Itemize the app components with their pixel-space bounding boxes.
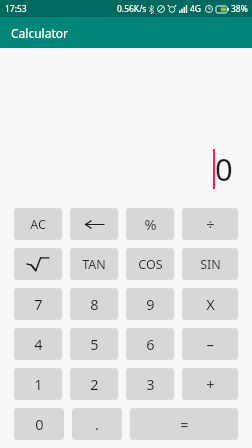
staticText: X — [206, 294, 215, 314]
staticText: 0 — [215, 148, 233, 190]
staticText: + — [206, 374, 215, 394]
staticText: 1 — [34, 374, 43, 394]
button[interactable]: TAN — [70, 248, 118, 280]
button[interactable]: . — [72, 408, 122, 440]
staticText: % — [144, 214, 157, 234]
button[interactable]: 8 — [70, 288, 118, 320]
button[interactable]: 7 — [14, 288, 62, 320]
button[interactable]: + — [182, 368, 238, 400]
staticText: 0.56K/s — [117, 3, 147, 15]
button[interactable]: 3 — [126, 368, 174, 400]
staticText: 38% — [231, 3, 248, 15]
staticText: 4 — [34, 334, 43, 354]
staticText: 5 — [90, 334, 99, 354]
button[interactable]: AC — [14, 208, 62, 240]
staticText: 3 — [146, 374, 155, 394]
button[interactable]: 4 — [14, 328, 62, 360]
button[interactable]: 2 — [70, 368, 118, 400]
button[interactable]: 0 — [14, 408, 64, 440]
button[interactable]: 6 — [126, 328, 174, 360]
staticText: = — [180, 414, 189, 434]
button[interactable]: Square root — [14, 248, 62, 280]
staticText: 2 — [90, 374, 99, 394]
staticText: SIN — [200, 256, 221, 273]
button[interactable]: ÷ — [182, 208, 238, 240]
button[interactable]: 1 — [14, 368, 62, 400]
staticText: AC — [30, 216, 46, 233]
staticText: COS — [138, 256, 163, 273]
button[interactable]: – — [182, 328, 238, 360]
button[interactable]: X — [182, 288, 238, 320]
button[interactable]: = — [130, 408, 238, 440]
staticText: . — [95, 414, 99, 434]
staticText: TAN — [82, 256, 106, 273]
button[interactable]: 9 — [126, 288, 174, 320]
button[interactable]: Backspace — [70, 208, 118, 240]
staticText: – — [206, 334, 214, 354]
staticText: Calculator — [11, 25, 68, 41]
staticText: 4G — [190, 3, 202, 15]
button[interactable]: % — [126, 208, 174, 240]
button[interactable]: 5 — [70, 328, 118, 360]
staticText: 8 — [90, 294, 99, 314]
staticText: ÷ — [206, 214, 215, 234]
button[interactable]: SIN — [182, 248, 238, 280]
staticText: 6 — [146, 334, 155, 354]
button[interactable]: COS — [126, 248, 174, 280]
staticText: 9 — [146, 294, 155, 314]
staticText: 17:53 — [5, 3, 27, 15]
staticText: 0 — [35, 414, 44, 434]
staticText: 7 — [34, 294, 43, 314]
